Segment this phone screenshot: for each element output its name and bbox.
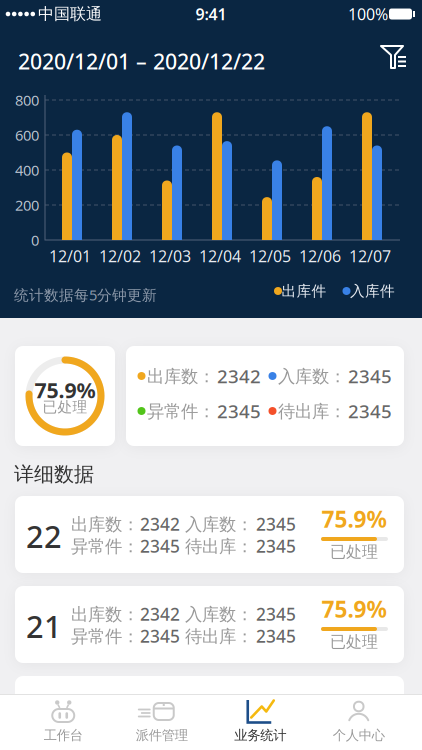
- staticText: 12/03: [149, 245, 191, 267]
- staticText: 12/07: [349, 245, 391, 267]
- staticText: 已处理: [330, 632, 378, 652]
- button[interactable]: 个人中心: [309, 700, 408, 743]
- staticText: 2345: [217, 399, 261, 423]
- staticText: 9:41: [195, 3, 226, 25]
- staticText: 75.9%: [34, 376, 95, 404]
- staticText: 22: [26, 516, 62, 556]
- staticText: 待出库：: [278, 401, 346, 422]
- staticText: 12/01: [49, 245, 91, 267]
- button[interactable]: 派件管理: [112, 700, 211, 743]
- button[interactable]: 筛选: [379, 44, 407, 70]
- staticText: 21: [26, 606, 62, 646]
- staticText: 2342: [140, 512, 180, 535]
- staticText: 已处理: [330, 542, 378, 562]
- staticText: 统计数据每5分钟更新: [14, 285, 157, 304]
- staticText: 2345: [140, 534, 180, 557]
- staticText: 入库数：: [185, 604, 253, 625]
- staticText: 待出库：: [185, 536, 253, 557]
- staticText: 出库数：: [71, 514, 139, 535]
- staticText: 600: [15, 125, 39, 145]
- staticText: 2342: [140, 602, 180, 625]
- staticText: 75.9%: [321, 594, 386, 624]
- button[interactable]: 选择日期范围: [18, 47, 265, 75]
- staticText: 75.9%: [321, 504, 386, 534]
- button[interactable]: 22: [15, 496, 404, 573]
- staticText: 入库数：: [278, 366, 346, 387]
- staticText: 详细数据: [14, 462, 94, 487]
- staticText: 100%: [348, 3, 388, 25]
- staticText: 出库数：: [71, 604, 139, 625]
- staticText: 2345: [348, 399, 392, 423]
- staticText: 入库数：: [185, 514, 253, 535]
- staticText: 已处理: [42, 398, 87, 416]
- staticText: 2020/12/01 – 2020/12/22: [18, 47, 265, 75]
- staticText: 2345: [348, 364, 392, 388]
- staticText: 出库件: [281, 282, 326, 300]
- staticText: 12/06: [299, 245, 341, 267]
- staticText: 2345: [256, 534, 296, 557]
- staticText: 0: [31, 230, 39, 250]
- staticText: 800: [15, 90, 39, 110]
- button[interactable]: 业务统计: [211, 700, 309, 743]
- button[interactable]: 工作台: [14, 700, 112, 743]
- staticText: 2345: [256, 512, 296, 535]
- staticText: 2345: [256, 624, 296, 647]
- staticText: 400: [15, 160, 39, 180]
- staticText: 个人中心: [333, 727, 385, 743]
- staticText: 异常件：: [71, 626, 139, 647]
- staticText: 12/04: [199, 245, 241, 267]
- staticText: 12/02: [99, 245, 141, 267]
- staticText: 2342: [217, 364, 261, 388]
- staticText: 200: [15, 195, 39, 215]
- staticText: 出库数：: [147, 366, 215, 387]
- staticText: 2345: [140, 624, 180, 647]
- staticText: 2345: [256, 602, 296, 625]
- staticText: 入库件: [350, 282, 395, 300]
- button[interactable]: 21: [15, 586, 404, 663]
- staticText: 工作台: [44, 727, 83, 743]
- staticText: 异常件：: [147, 401, 215, 422]
- staticText: 12/05: [249, 245, 291, 267]
- staticText: 异常件：: [71, 536, 139, 557]
- staticText: 待出库：: [185, 626, 253, 647]
- staticText: 业务统计: [234, 727, 286, 743]
- staticText: 派件管理: [136, 727, 188, 743]
- staticText: 中国联通: [38, 4, 102, 24]
